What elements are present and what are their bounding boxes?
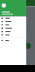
button[interactable]: Menu item <box>0 33 26 37</box>
button[interactable]: Menu item <box>0 30 26 33</box>
button[interactable]: Menu item <box>0 27 26 30</box>
button[interactable]: Menu item <box>0 23 26 27</box>
button[interactable]: Menu item <box>0 20 26 23</box>
button[interactable]: Menu item <box>0 16 26 20</box>
button[interactable]: Menu item <box>0 39 26 42</box>
